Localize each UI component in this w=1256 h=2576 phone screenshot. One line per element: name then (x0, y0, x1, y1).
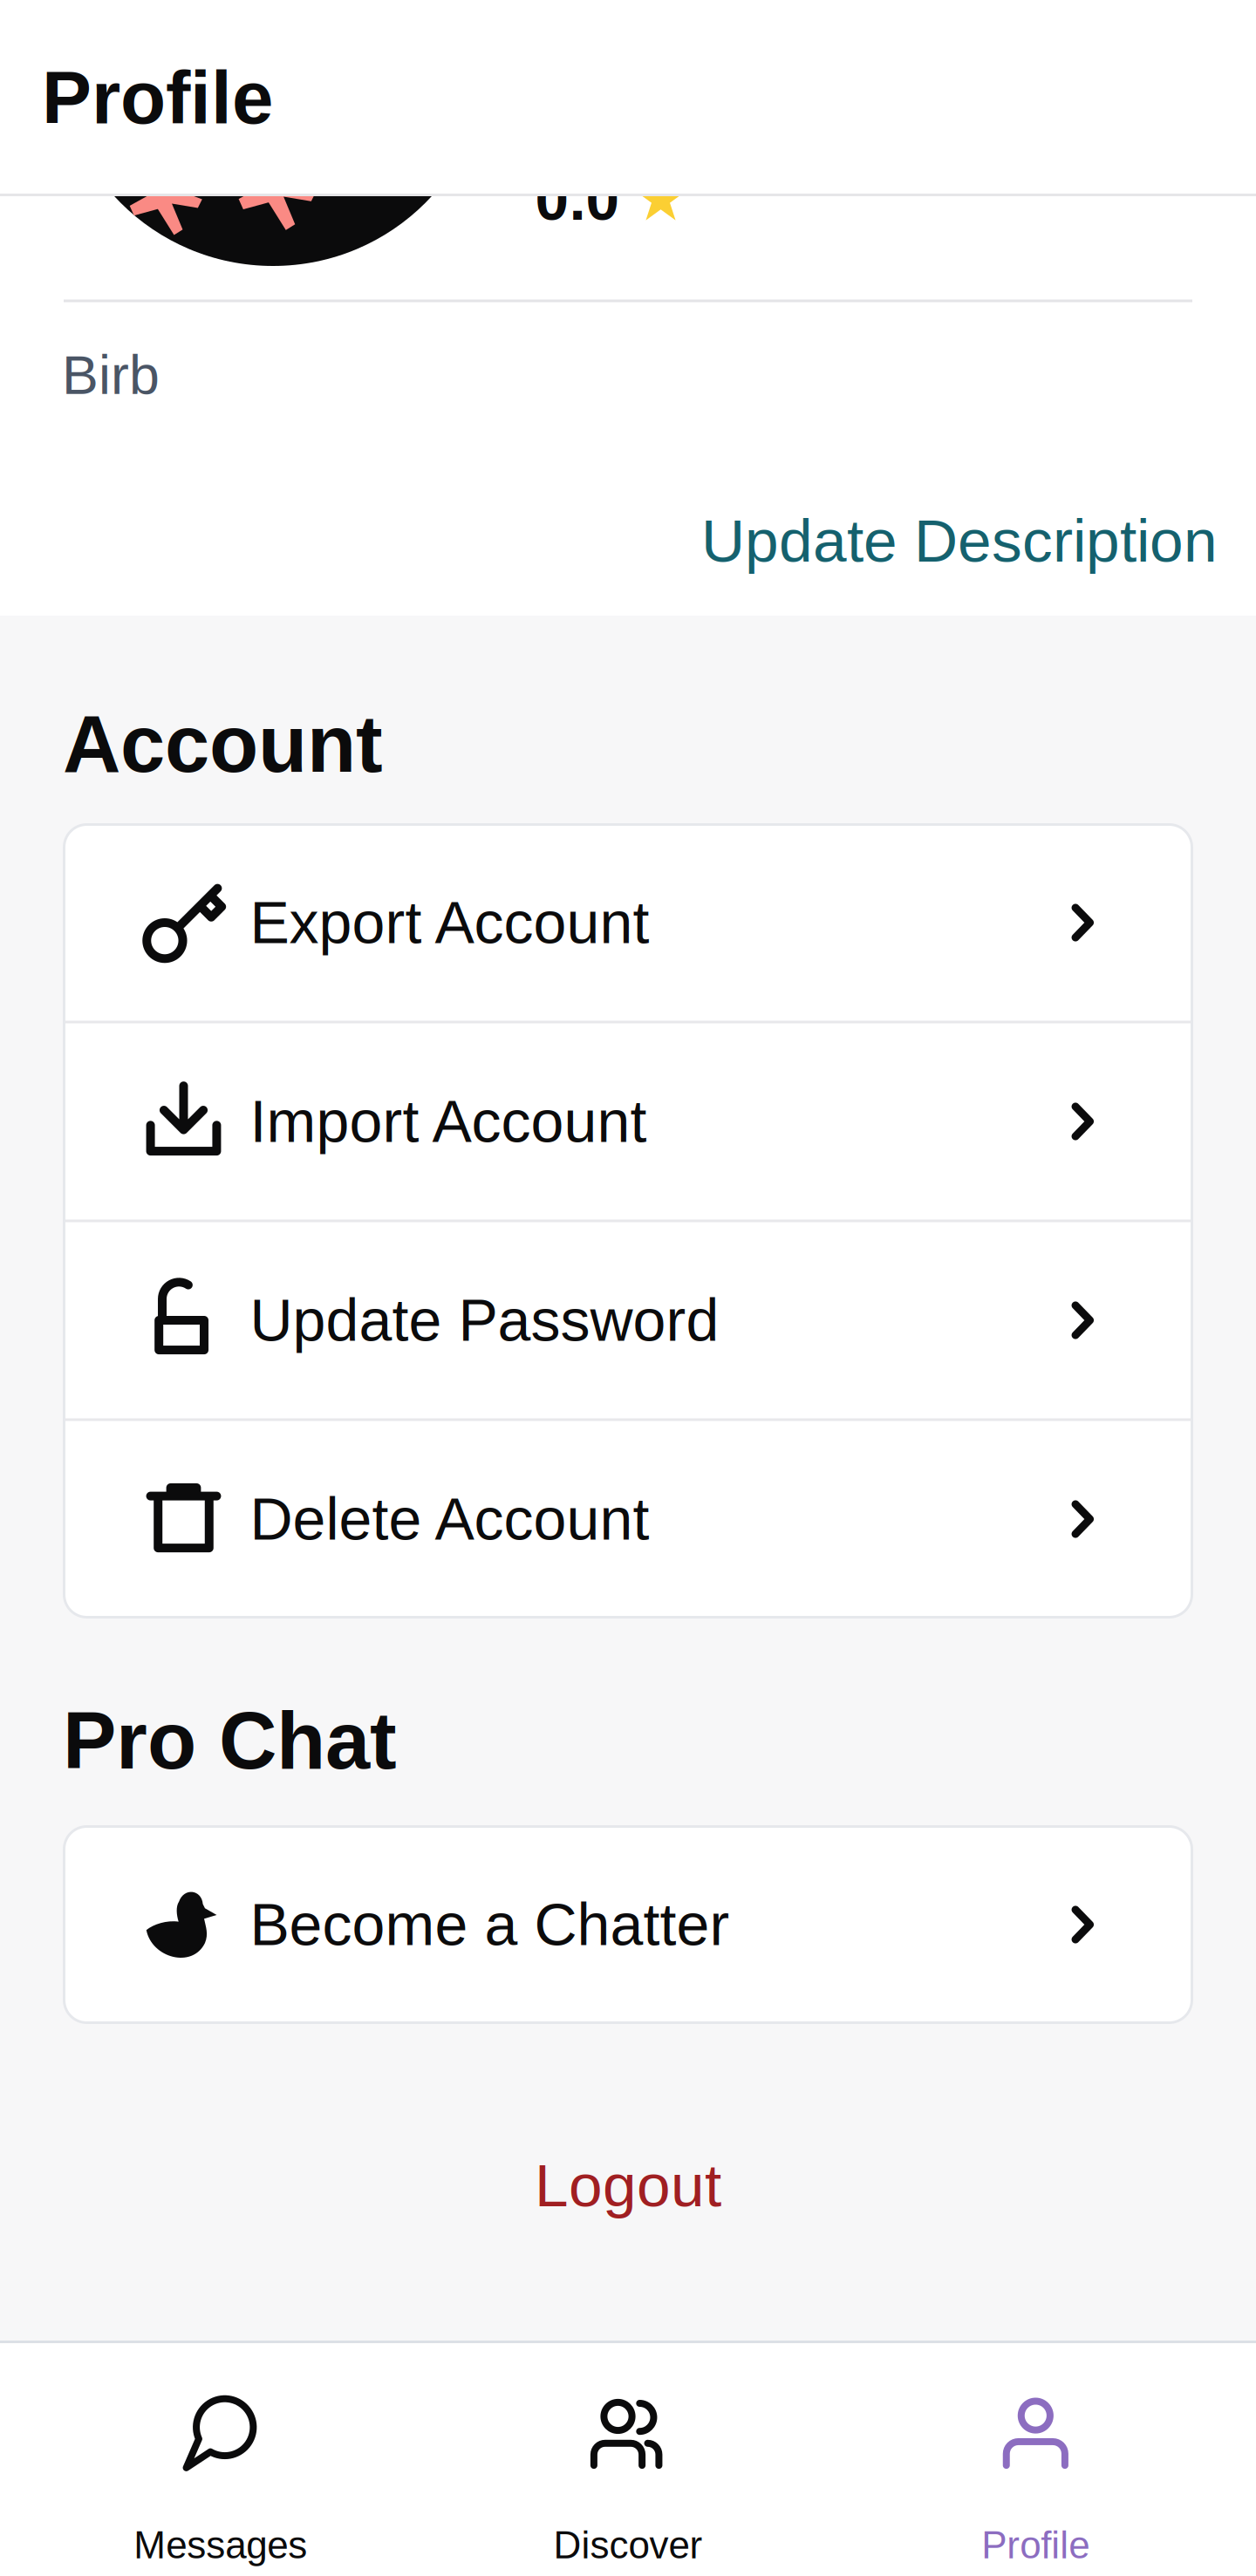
button[interactable]: Discover (424, 2343, 832, 2576)
staticText: Update Password (250, 1287, 719, 1353)
button[interactable]: Profile (832, 2343, 1239, 2576)
staticText: Export Account (250, 889, 649, 956)
staticText: Discover (553, 2524, 703, 2566)
staticText: Birb (62, 344, 160, 405)
button[interactable]: Update Password (64, 1222, 1192, 1418)
button[interactable]: Logout (500, 2132, 756, 2238)
staticText: 0.0 (535, 165, 620, 233)
staticText: Logout (535, 2152, 721, 2219)
staticText: Update Description (701, 507, 1218, 574)
button[interactable]: Update Description (701, 491, 1218, 590)
button[interactable]: Profile (30, 44, 285, 151)
staticText: Become a Chatter (250, 1891, 730, 1958)
button[interactable]: Messages (17, 2343, 424, 2576)
staticText: Account (63, 699, 383, 789)
staticText: Import Account (250, 1088, 647, 1155)
staticText: Delete Account (250, 1486, 649, 1552)
staticText: Messages (134, 2524, 307, 2566)
button[interactable]: Delete Account (64, 1421, 1192, 1617)
staticText: Profile (982, 2524, 1090, 2566)
staticText: Pro Chat (63, 1696, 397, 1785)
button[interactable]: Export Account (64, 825, 1192, 1021)
staticText: Profile (42, 56, 273, 139)
button[interactable]: Import Account (64, 1023, 1192, 1220)
button[interactable]: Become a Chatter (64, 1826, 1192, 2023)
